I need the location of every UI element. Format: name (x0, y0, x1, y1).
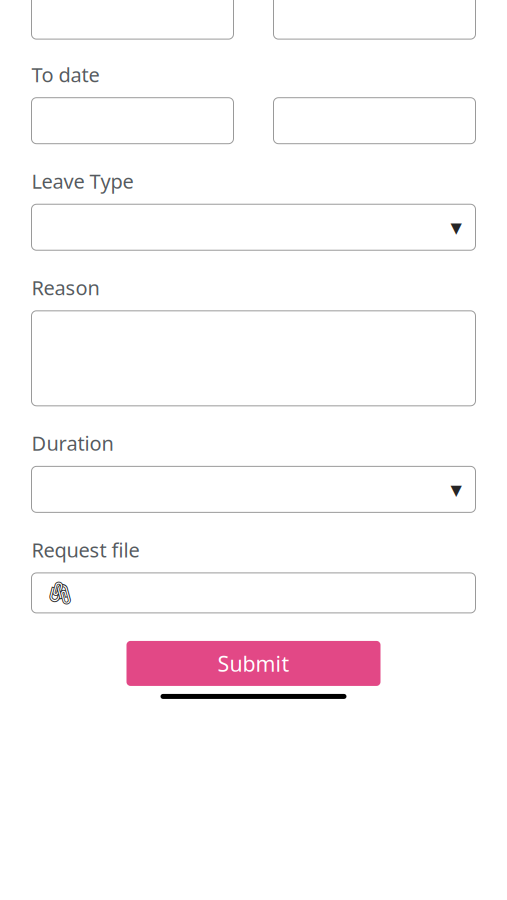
button[interactable]: Text field (31, 0, 233, 39)
button[interactable]: Submit (126, 641, 380, 686)
button[interactable]: Select option (31, 466, 475, 512)
staticText: Submit (217, 649, 289, 678)
staticText: 🖇 (45, 580, 74, 606)
staticText: Reason (31, 274, 99, 301)
button[interactable]: Text field (273, 98, 475, 144)
button[interactable]: Attach request file (31, 573, 475, 613)
staticText: To date (31, 61, 99, 88)
staticText: Request file (31, 536, 139, 563)
button[interactable]: Text field (31, 311, 475, 406)
button[interactable]: Text field (273, 0, 475, 39)
staticText: Duration (31, 430, 113, 456)
button[interactable]: Select option (31, 204, 475, 250)
button[interactable]: Text field (31, 98, 233, 144)
staticText: ▾ (450, 214, 461, 240)
staticText: ▾ (450, 476, 461, 502)
staticText: Leave Type (31, 168, 133, 194)
